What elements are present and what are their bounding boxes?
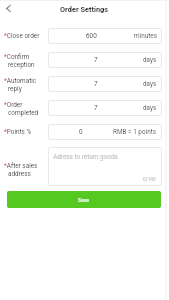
staticText: address bbox=[8, 170, 31, 178]
staticText: completed bbox=[8, 109, 39, 117]
staticText: RMB = 1 points bbox=[113, 128, 157, 136]
button[interactable]: Back bbox=[0, 0, 17, 17]
staticText: 7 bbox=[94, 104, 98, 112]
staticText: *Close order bbox=[4, 32, 40, 40]
button[interactable]: 7 bbox=[48, 100, 162, 116]
staticText: *Order bbox=[4, 101, 23, 109]
staticText: 0 bbox=[79, 128, 83, 136]
staticText: minutes bbox=[134, 32, 157, 40]
staticText: Adress to return goods bbox=[53, 153, 118, 161]
button[interactable]: *After sales bbox=[0, 162, 48, 179]
staticText: 7 bbox=[94, 56, 98, 64]
staticText: reception bbox=[8, 61, 35, 69]
button[interactable]: *Confirm bbox=[0, 53, 48, 69]
button[interactable]: Adress to return goods bbox=[48, 147, 162, 186]
staticText: 0/140 bbox=[143, 177, 156, 183]
staticText: 7 bbox=[94, 80, 98, 88]
staticText: 600 bbox=[86, 32, 97, 40]
staticText: days bbox=[143, 80, 157, 88]
staticText: Save bbox=[78, 197, 90, 203]
staticText: days bbox=[143, 104, 157, 112]
staticText: *Automatic bbox=[4, 77, 37, 85]
staticText: reply bbox=[8, 85, 22, 93]
button[interactable]: 600 bbox=[48, 28, 162, 44]
button[interactable]: *Automatic bbox=[0, 77, 48, 93]
button[interactable]: *Close order bbox=[0, 32, 48, 41]
button[interactable]: *Points % bbox=[0, 128, 48, 137]
button[interactable]: *Order bbox=[0, 101, 48, 117]
staticText: Order Settings bbox=[60, 5, 109, 14]
button[interactable]: 7 bbox=[48, 52, 162, 68]
button[interactable]: Save bbox=[7, 191, 161, 208]
staticText: *Confirm bbox=[4, 53, 30, 61]
staticText: days bbox=[143, 56, 157, 64]
button[interactable]: 0 bbox=[48, 124, 162, 140]
staticText: *After sales bbox=[4, 162, 38, 170]
button[interactable]: 7 bbox=[48, 76, 162, 92]
staticText: *Points % bbox=[4, 128, 32, 136]
